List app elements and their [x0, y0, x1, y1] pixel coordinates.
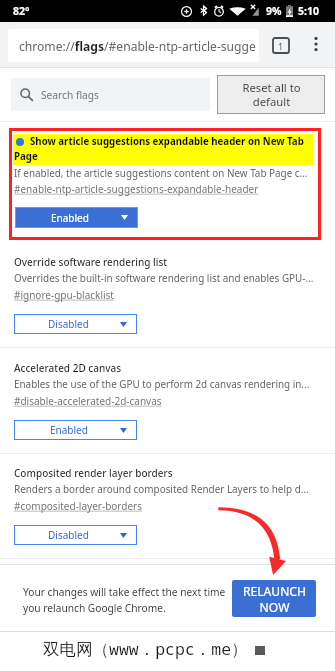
- button[interactable]: chrome://flags/#enable-ntp-article-sugge: [8, 29, 259, 62]
- staticText: 9%: [266, 4, 282, 18]
- staticText: #disable-accelerated-2d-canvas: [14, 394, 162, 408]
- staticText: Page: [14, 150, 38, 163]
- staticText: chrome://flags/#enable-ntp-article-sugge: [19, 38, 256, 54]
- staticText: Search flags: [41, 88, 99, 102]
- staticText: 82°: [13, 4, 30, 18]
- button[interactable]: RELAUNCH NOW: [232, 580, 316, 617]
- staticText: Reset all to default: [242, 80, 301, 110]
- staticText: Composited render layer borders: [14, 466, 173, 480]
- button[interactable]: [9, 128, 321, 240]
- button[interactable]: Search flags: [11, 78, 210, 111]
- button[interactable]: Composited render layer borders: [0, 459, 335, 564]
- staticText: #composited-layer-borders: [14, 499, 142, 513]
- button[interactable]: Disabled: [14, 314, 137, 334]
- staticText: Accelerated 2D canvas: [14, 361, 122, 375]
- button[interactable]: Enabled: [15, 207, 138, 228]
- staticText: Overrides the built-in software renderin…: [14, 271, 314, 284]
- staticText: 双电网（www．pcpc．me）: [43, 637, 248, 660]
- staticText: 5:10: [298, 4, 319, 18]
- staticText: RELAUNCH NOW: [243, 583, 306, 615]
- staticText: 1: [278, 40, 284, 52]
- button[interactable]: Reset all to default: [217, 75, 325, 114]
- staticText: Disabled: [48, 317, 89, 331]
- staticText: Show article suggestions expandable head…: [30, 135, 304, 148]
- button[interactable]: More options: [306, 34, 326, 54]
- staticText: Enabled: [51, 211, 89, 225]
- button[interactable]: Enabled: [14, 420, 137, 440]
- staticText: Disabled: [48, 528, 89, 542]
- staticText: Renders a border around composited Rende…: [14, 482, 309, 495]
- staticText: #ignore-gpu-blacklist: [14, 288, 114, 302]
- staticText: #enable-ntp-article-suggestions-expandab…: [14, 182, 259, 196]
- staticText: If enabled, the article suggestions cont…: [14, 166, 308, 179]
- button[interactable]: Tabs: [273, 38, 289, 53]
- button[interactable]: Override software rendering list: [0, 248, 335, 353]
- staticText: Override software rendering list: [14, 255, 168, 269]
- staticText: Enables the use of the GPU to perform 2d…: [14, 377, 310, 390]
- staticText: Enabled: [50, 423, 88, 437]
- staticText: Your changes will take effect the next t…: [23, 585, 226, 615]
- button[interactable]: Disabled: [14, 525, 137, 545]
- button[interactable]: Accelerated 2D canvas: [0, 354, 335, 459]
